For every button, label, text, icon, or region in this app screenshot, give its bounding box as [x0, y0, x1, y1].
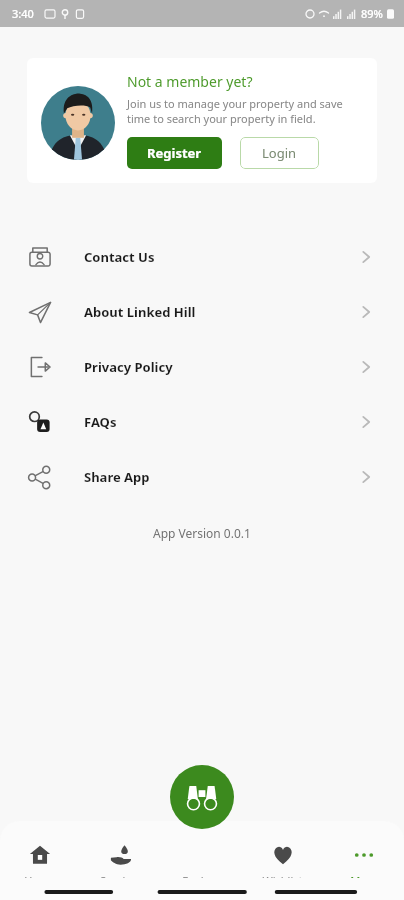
button[interactable]: Register — [127, 137, 222, 169]
button[interactable]: Wishlist — [242, 830, 323, 878]
staticText: Wishlist — [262, 873, 303, 878]
button[interactable]: FAQs — [0, 394, 404, 449]
button[interactable]: Explore — [170, 765, 234, 829]
staticText: Explore — [182, 873, 221, 878]
staticText: Not a member yet? — [127, 72, 253, 91]
staticText: FAQs — [84, 413, 358, 431]
button[interactable]: Privacy Policy — [0, 339, 404, 394]
staticText: 89% — [361, 6, 383, 21]
button[interactable]: Login — [240, 137, 319, 169]
staticText: Login — [262, 144, 297, 162]
staticText: 3:40 — [12, 6, 34, 21]
button[interactable]: Share App — [0, 449, 404, 504]
staticText: Register — [147, 144, 202, 162]
button[interactable]: Home — [0, 830, 80, 878]
staticText: Services — [100, 873, 142, 878]
button[interactable]: About Linked Hill — [0, 284, 404, 339]
button[interactable]: Explore — [161, 830, 242, 878]
staticText: Join us to manage your property and save… — [127, 96, 361, 126]
staticText: App Version 0.0.1 — [153, 525, 251, 541]
staticText: Contact Us — [84, 248, 358, 266]
button[interactable]: Services — [80, 830, 161, 878]
button[interactable]: Contact Us — [0, 229, 404, 284]
staticText: More — [350, 873, 378, 878]
staticText: Privacy Policy — [84, 358, 358, 376]
staticText: About Linked Hill — [84, 303, 358, 321]
staticText: Home — [24, 873, 56, 878]
staticText: Share App — [84, 468, 358, 486]
button[interactable]: More — [323, 830, 404, 878]
